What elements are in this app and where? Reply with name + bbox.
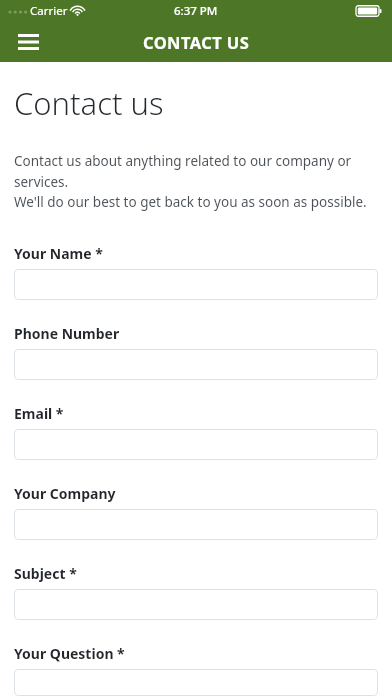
- staticText: Phone Number: [14, 324, 120, 343]
- button[interactable]: Your Name *: [14, 269, 378, 300]
- button[interactable]: Your Company: [14, 509, 378, 540]
- staticText: 6:37 PM: [174, 3, 218, 19]
- staticText: Contact us: [14, 82, 164, 124]
- button[interactable]: Your Question *: [14, 669, 378, 696]
- staticText: CONTACT US: [143, 31, 250, 53]
- staticText: Your Company: [14, 484, 116, 503]
- staticText: Carrier: [30, 3, 68, 19]
- staticText: We'll do our best to get back to you as …: [14, 193, 367, 211]
- staticText: Your Question *: [14, 644, 125, 663]
- staticText: Contact us about anything related to our…: [14, 152, 378, 191]
- staticText: Email *: [14, 404, 64, 423]
- button[interactable]: Phone Number: [14, 349, 378, 380]
- button[interactable]: Email *: [14, 429, 378, 460]
- staticText: Subject *: [14, 564, 77, 583]
- button[interactable]: Open navigation menu: [8, 22, 48, 62]
- button[interactable]: Subject *: [14, 589, 378, 620]
- staticText: Your Name *: [14, 244, 103, 263]
